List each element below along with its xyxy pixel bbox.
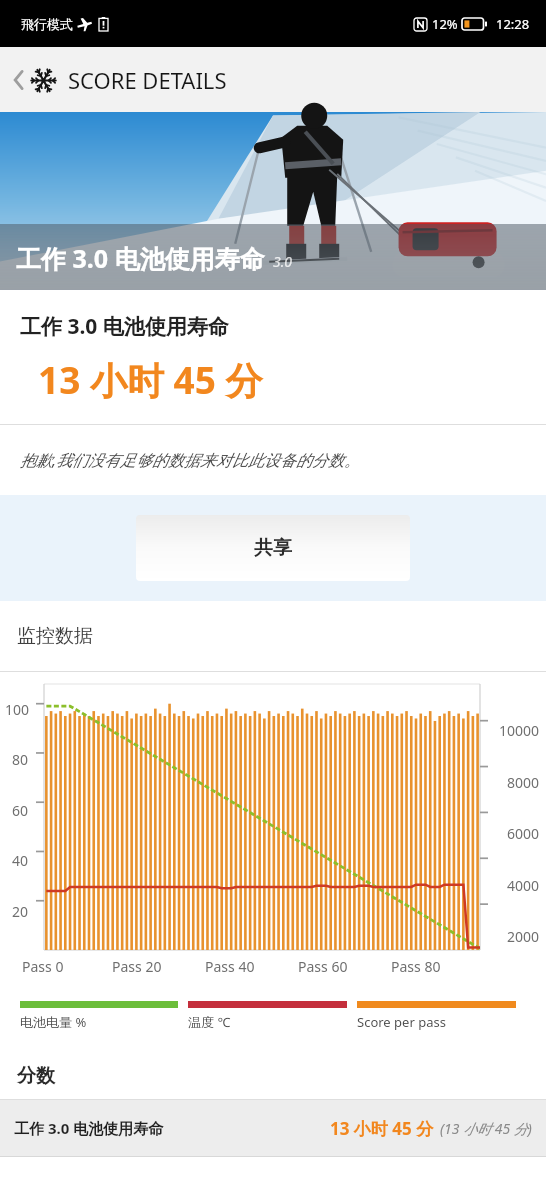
- staticText: 40: [12, 851, 29, 870]
- staticText: 抱歉,我们没有足够的数据来对比此设备的分数。: [20, 449, 361, 471]
- staticText: 4000: [507, 876, 540, 895]
- staticText: 8000: [507, 773, 540, 792]
- button[interactable]: Back: [6, 57, 233, 103]
- staticText: 工作 3.0 电池使用寿命: [14, 1118, 164, 1138]
- button[interactable]: 共享: [136, 515, 410, 581]
- staticText: Pass 80: [391, 957, 441, 976]
- staticText: SCORE DETAILS: [68, 65, 227, 95]
- staticText: 12%: [432, 15, 458, 33]
- staticText: 监控数据: [17, 624, 93, 648]
- staticText: 80: [12, 750, 29, 769]
- staticText: 共享: [254, 536, 292, 560]
- staticText: 温度 ℃: [188, 1013, 231, 1031]
- staticText: 12:28: [496, 15, 530, 33]
- staticText: 100: [5, 700, 30, 719]
- staticText: (13 小时 45 分): [440, 1119, 532, 1138]
- other: Back: [12, 68, 25, 92]
- staticText: 2000: [507, 927, 540, 946]
- staticText: 13 小时 45 分: [38, 354, 263, 405]
- staticText: Pass 60: [298, 957, 348, 976]
- staticText: Score per pass: [357, 1013, 446, 1031]
- staticText: 工作 3.0 电池使用寿命: [16, 241, 265, 275]
- staticText: 飛行模式: [21, 16, 73, 32]
- staticText: 分数: [17, 1064, 55, 1088]
- staticText: Pass 20: [112, 957, 162, 976]
- staticText: 13 小时 45 分: [330, 1117, 434, 1140]
- staticText: 工作 3.0 电池使用寿命: [20, 312, 229, 341]
- button[interactable]: 工作 3.0 电池使用寿命: [0, 1100, 546, 1156]
- staticText: 3.0: [273, 252, 293, 271]
- staticText: 60: [12, 801, 29, 820]
- staticText: 6000: [507, 824, 540, 843]
- staticText: Pass 0: [22, 957, 64, 976]
- staticText: Pass 40: [205, 957, 255, 976]
- staticText: 电池电量 %: [20, 1013, 87, 1031]
- staticText: 20: [12, 902, 29, 921]
- staticText: 10000: [499, 721, 540, 740]
